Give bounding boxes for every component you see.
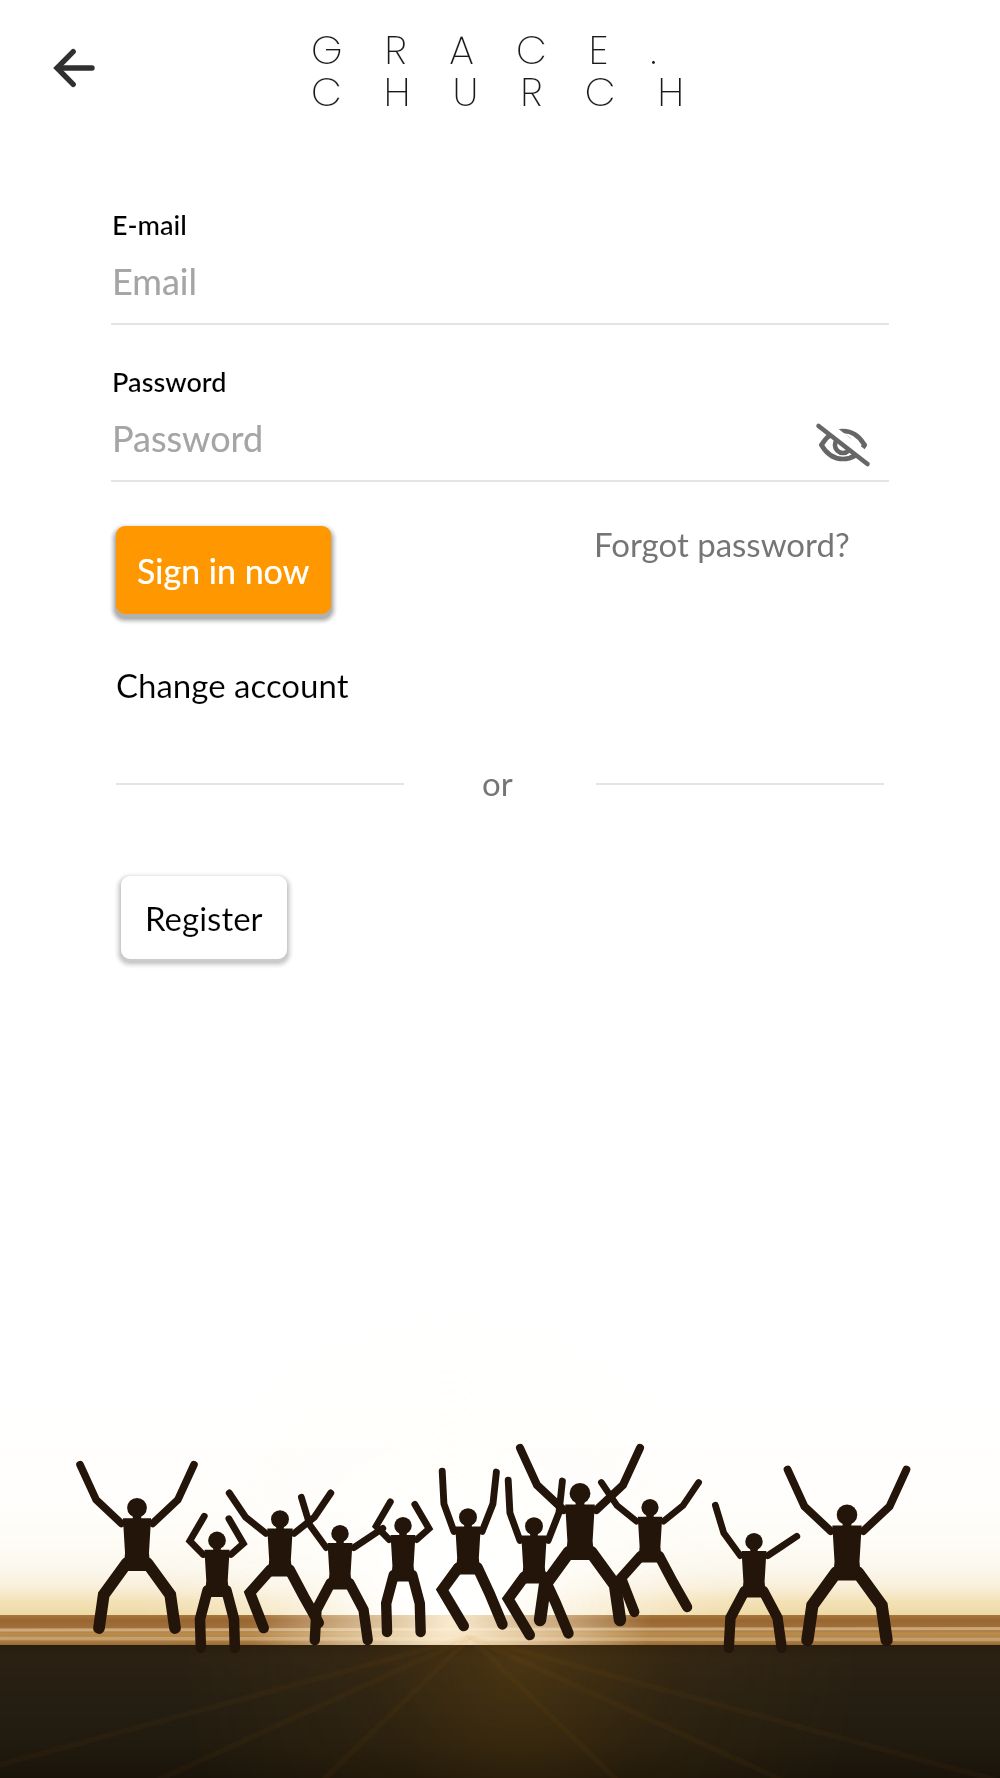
staticText: or <box>482 763 513 803</box>
staticText: Forgot password? <box>594 524 850 564</box>
button[interactable]: Forgot password? <box>594 524 850 564</box>
button[interactable]: Back <box>44 38 104 98</box>
staticText: E-mail <box>112 208 187 240</box>
staticText: Email <box>112 259 197 302</box>
staticText: Password <box>112 416 264 459</box>
button[interactable]: Register <box>121 876 287 959</box>
staticText: Password <box>112 365 227 397</box>
staticText: Register <box>145 898 263 938</box>
staticText: GRACE. <box>311 22 699 78</box>
staticText: CHURCH <box>311 64 727 120</box>
staticText: Sign in now <box>137 550 310 591</box>
button[interactable]: Sign in now <box>116 526 331 614</box>
staticText: Change account <box>116 665 349 705</box>
button[interactable]: Change account <box>116 665 349 705</box>
button[interactable]: Show password <box>805 407 881 483</box>
